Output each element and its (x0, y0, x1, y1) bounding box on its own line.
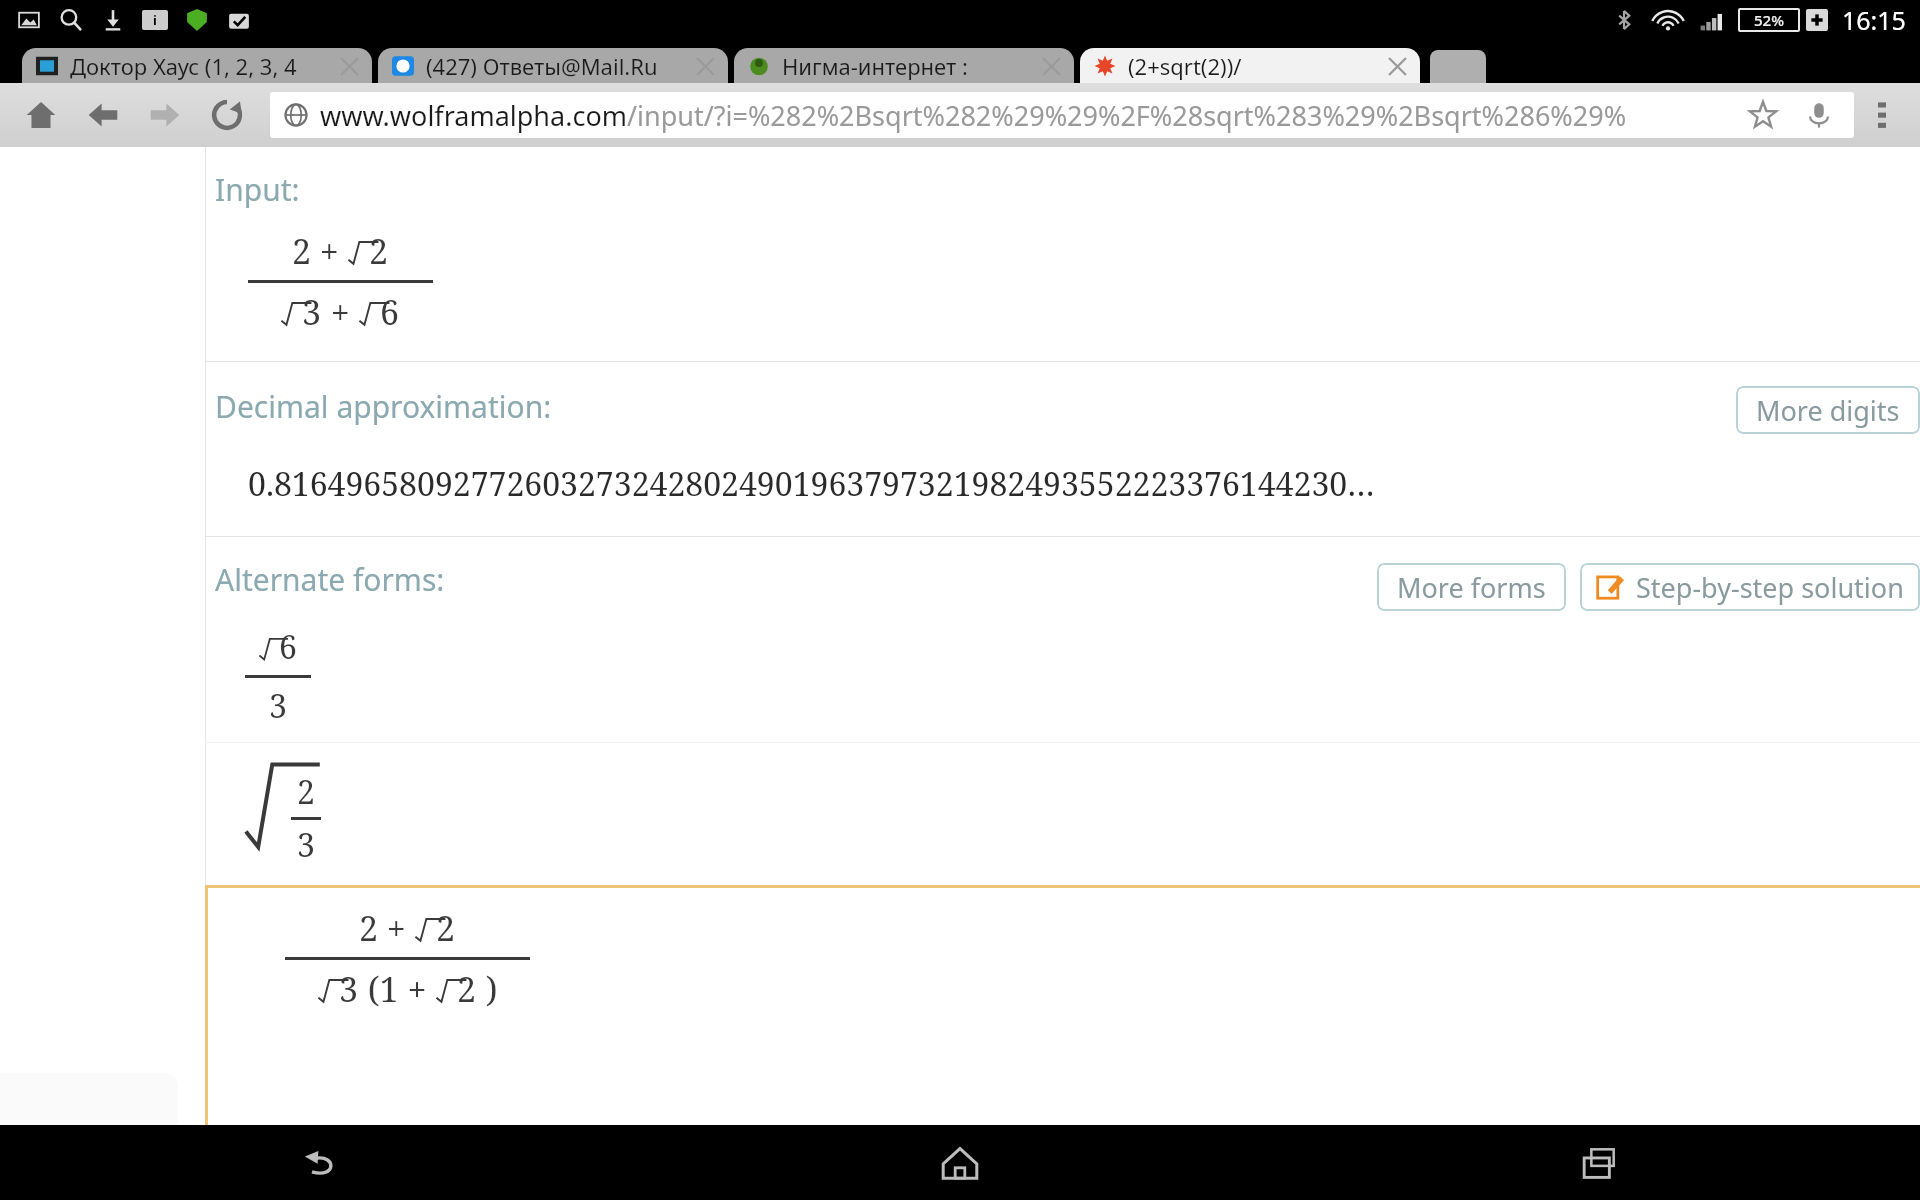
button[interactable]: New tab (1430, 50, 1486, 83)
staticText: www.wolframalpha.com (320, 97, 627, 134)
button[interactable]: www.wolframalpha.com (270, 92, 1854, 138)
button[interactable]: Нигма-интернет : (734, 48, 1074, 83)
button[interactable]: Close tab (334, 51, 364, 81)
staticText: 3 (339, 966, 359, 1012)
staticText: 3 (302, 289, 322, 335)
button[interactable]: Close tab (1382, 51, 1412, 81)
staticText: 2 (457, 966, 477, 1012)
staticText: Step-by-step solution (1636, 569, 1904, 606)
staticText: i (153, 11, 157, 29)
button[interactable]: Reload (196, 84, 258, 146)
staticText: Input: (215, 169, 300, 210)
button[interactable]: Доктор Хаус (1, 2, 3, 4 (22, 48, 372, 83)
button[interactable]: Back (72, 84, 134, 146)
button[interactable]: Bookmark (1742, 94, 1784, 136)
button[interactable]: More digits (1736, 386, 1920, 434)
button[interactable]: Back (0, 1125, 640, 1200)
staticText: Нигма-интернет : (782, 51, 1030, 81)
staticText: (427) Ответы@Mail.Ru (426, 51, 684, 81)
staticText: Доктор Хаус (1, 2, 3, 4 (70, 51, 328, 81)
button[interactable]: Home (640, 1125, 1280, 1200)
staticText: ) (477, 966, 498, 1012)
staticText: 0.81649658092772603273242802490196379732… (248, 462, 1375, 506)
staticText: Alternate forms: (215, 559, 445, 600)
staticText: + (322, 289, 359, 335)
staticText: 6 (279, 625, 297, 669)
staticText: 16:15 (1842, 3, 1906, 37)
button[interactable]: More options (1854, 83, 1910, 147)
staticText: More forms (1397, 569, 1546, 606)
staticText: /input/?i=%282%2Bsqrt%282%29%29%2F%28sqr… (627, 97, 1627, 134)
staticText: More digits (1756, 392, 1900, 429)
staticText: 2 + (359, 905, 415, 951)
staticText: Decimal approximation: (215, 386, 552, 427)
staticText: 2 (436, 905, 456, 951)
button[interactable]: More forms (1377, 563, 1566, 611)
staticText: 52% (1754, 10, 1784, 30)
staticText: 6 (380, 289, 400, 335)
button[interactable]: (427) Ответы@Mail.Ru (378, 48, 728, 83)
button[interactable]: Recent apps (1280, 1125, 1920, 1200)
staticText: 2 (297, 770, 315, 814)
button[interactable]: Close tab (690, 51, 720, 81)
staticText: 3 (269, 684, 287, 728)
staticText: (1 + (359, 966, 436, 1012)
staticText: (2+sqrt(2))/ (1128, 51, 1376, 81)
button[interactable]: Home (10, 84, 72, 146)
staticText: 2 (369, 228, 389, 274)
button[interactable]: Close tab (1036, 51, 1066, 81)
staticText: 2 + (292, 228, 348, 274)
button[interactable]: (2+sqrt(2))/ (1080, 48, 1420, 83)
button[interactable]: Step-by-step solution (1580, 563, 1920, 611)
button[interactable]: Forward (134, 84, 196, 146)
button[interactable]: Voice search (1798, 94, 1840, 136)
staticText: 3 (297, 823, 315, 867)
